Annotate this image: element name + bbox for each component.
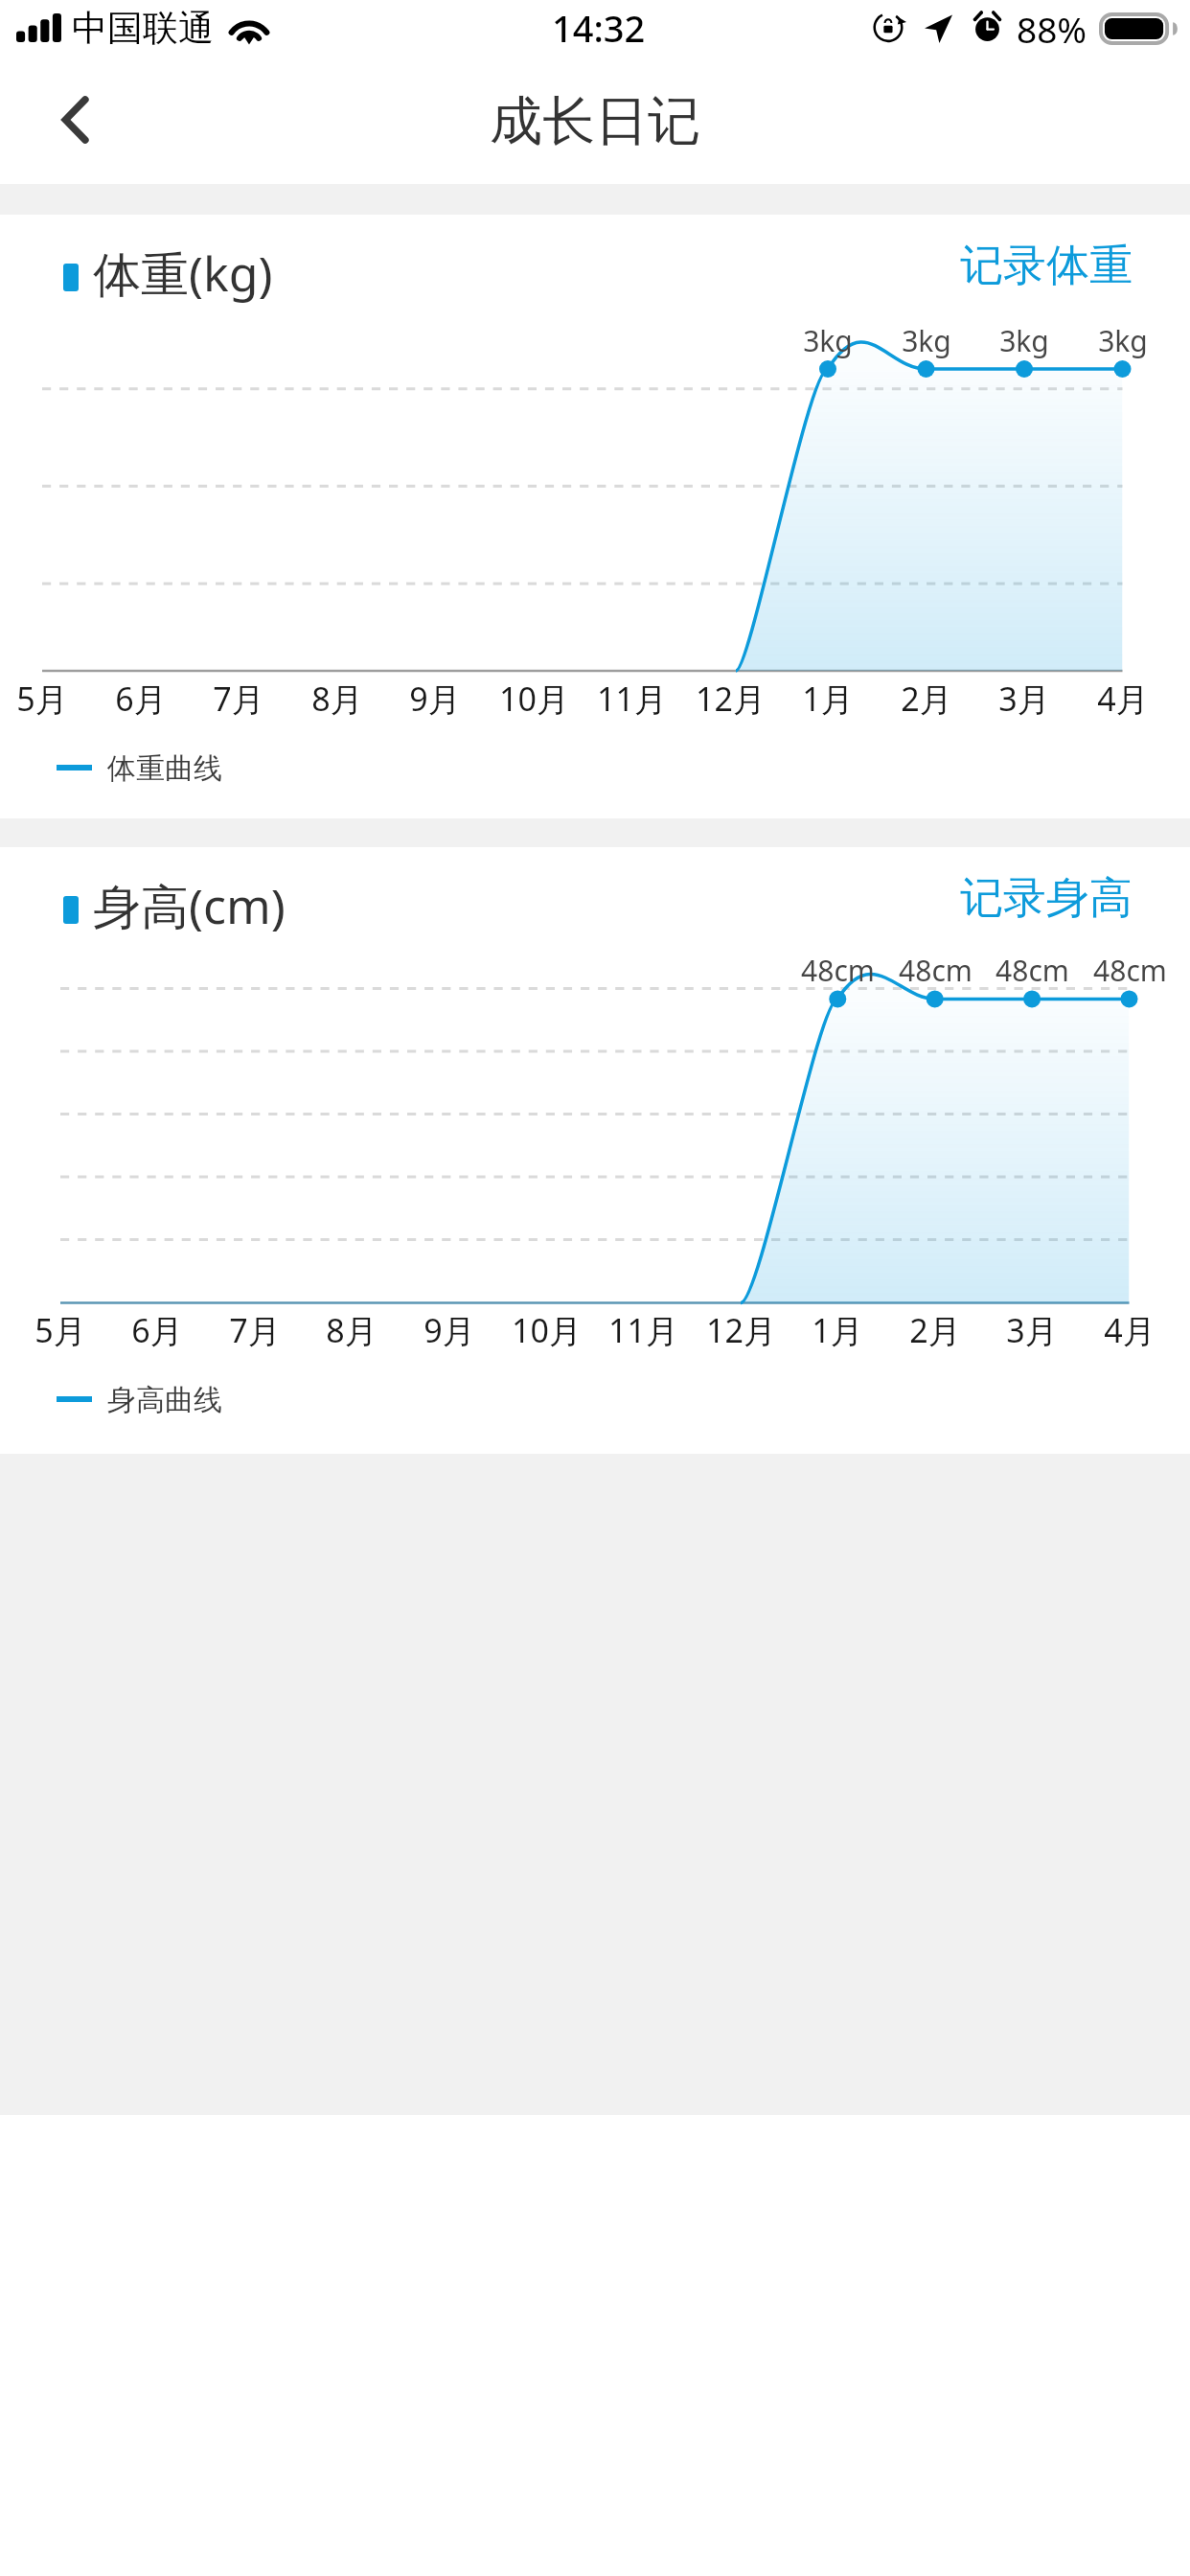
staticText: 9月 <box>409 677 461 721</box>
staticText: 10月 <box>512 1308 582 1352</box>
staticText: 12月 <box>696 677 766 721</box>
staticText: 身高曲线 <box>107 1382 222 1418</box>
button[interactable]: 记录体重 <box>920 222 1133 309</box>
staticText: 6月 <box>131 1308 183 1352</box>
staticText: 成长日记 <box>490 88 700 154</box>
staticText: 3kg <box>999 321 1049 359</box>
staticText: 9月 <box>423 1308 475 1352</box>
staticText: 2月 <box>901 677 952 721</box>
staticText: 记录身高 <box>960 871 1133 926</box>
staticText: 10月 <box>499 677 569 721</box>
staticText: 1月 <box>802 677 854 721</box>
staticText: 12月 <box>706 1308 776 1352</box>
staticText: 3kg <box>902 321 951 359</box>
button[interactable]: Back <box>13 84 117 184</box>
staticText: 11月 <box>597 677 667 721</box>
staticText: 3kg <box>803 321 853 359</box>
staticText: 7月 <box>229 1308 281 1352</box>
staticText: 身高(cm) <box>93 873 286 938</box>
staticText: 记录体重 <box>960 239 1133 293</box>
staticText: 48cm <box>995 951 1069 989</box>
staticText: 48cm <box>801 951 875 989</box>
staticText: 体重(kg) <box>93 241 273 306</box>
staticText: 4月 <box>1104 1308 1156 1352</box>
staticText: 88% <box>1017 5 1087 53</box>
staticText: 14:32 <box>552 3 646 53</box>
staticText: 8月 <box>311 677 363 721</box>
staticText: 3kg <box>1098 321 1148 359</box>
staticText: 5月 <box>16 677 68 721</box>
staticText: 7月 <box>213 677 264 721</box>
staticText: 11月 <box>608 1308 678 1352</box>
staticText: 48cm <box>1093 951 1167 989</box>
staticText: 2月 <box>909 1308 961 1352</box>
staticText: 3月 <box>998 677 1050 721</box>
staticText: 体重曲线 <box>107 750 222 787</box>
staticText: 5月 <box>34 1308 86 1352</box>
staticText: 1月 <box>812 1308 863 1352</box>
staticText: 6月 <box>115 677 167 721</box>
staticText: 4月 <box>1097 677 1149 721</box>
button[interactable]: 记录身高 <box>920 855 1133 941</box>
staticText: 48cm <box>899 951 973 989</box>
staticText: 中国联通 <box>72 6 214 51</box>
staticText: 8月 <box>326 1308 378 1352</box>
staticText: 3月 <box>1006 1308 1058 1352</box>
